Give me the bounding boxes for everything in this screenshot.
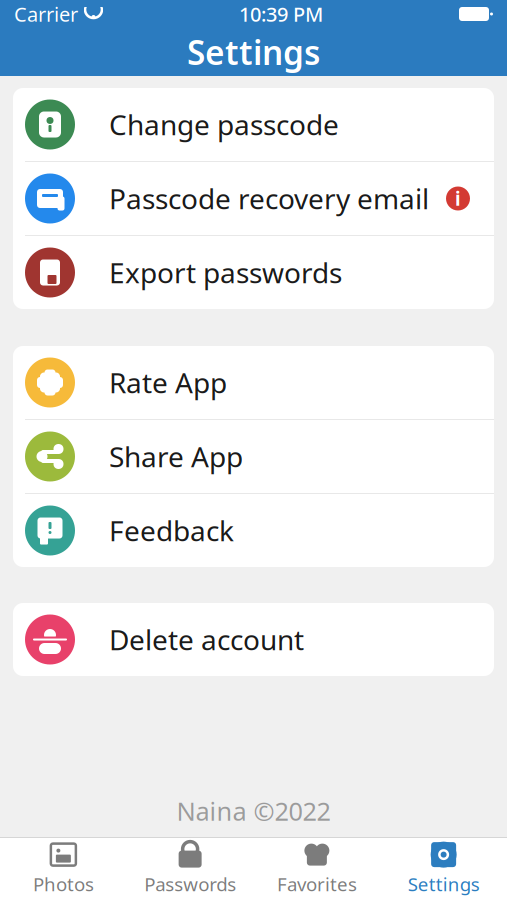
staticText: Feedback	[109, 512, 234, 549]
staticText: Share App	[109, 438, 243, 475]
staticText: Export passwords	[109, 254, 342, 291]
button[interactable]: Delete account	[13, 603, 494, 676]
staticText: Settings	[187, 30, 320, 74]
button[interactable]: Change passcode	[13, 88, 494, 161]
button[interactable]: Share App	[13, 420, 494, 493]
button[interactable]: Favorites	[253, 838, 380, 900]
staticText: Rate App	[109, 364, 227, 401]
button[interactable]: Export passwords	[13, 236, 494, 309]
staticText: 10:39 PM	[239, 1, 323, 27]
button[interactable]: Feedback	[13, 494, 494, 567]
button[interactable]: Rate App	[13, 346, 494, 419]
button[interactable]: Photos	[0, 838, 127, 900]
staticText: Passcode recovery email	[109, 180, 429, 217]
staticText: Naina ©2022	[176, 794, 330, 828]
staticText: Delete account	[109, 621, 304, 658]
staticText: Photos	[33, 872, 94, 896]
staticText: Carrier	[14, 1, 78, 27]
staticText: Change passcode	[109, 106, 339, 143]
button[interactable]: Passcode recovery email	[13, 162, 494, 235]
staticText: Passwords	[144, 872, 236, 896]
button[interactable]: Settings	[380, 838, 507, 900]
staticText: Settings	[408, 872, 480, 896]
staticText: Favorites	[277, 872, 357, 896]
button[interactable]: Passwords	[127, 838, 254, 900]
staticText: i	[455, 186, 461, 211]
